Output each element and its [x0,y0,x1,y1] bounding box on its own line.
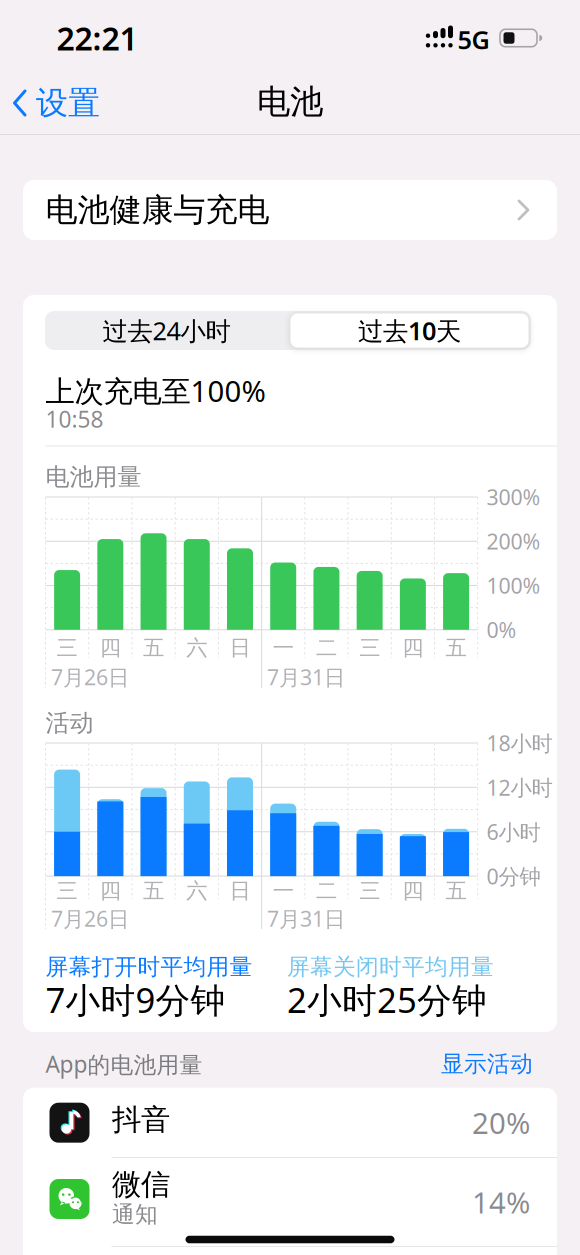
staticText: 三 [57,635,78,661]
staticText: 6小时 [486,818,540,846]
staticText: 2小时25分钟 [287,976,487,1022]
staticText: 18小时 [486,729,552,757]
staticText: 200% [486,527,540,555]
staticText: 五 [446,878,467,904]
button[interactable]: 显示活动 [413,1050,533,1078]
staticText: 通知 [112,1201,158,1228]
staticText: 活动 [45,708,93,738]
staticText: 电池健康与充电 [45,190,269,230]
staticText: 日 [229,635,250,661]
staticText: 微信 [112,1166,170,1202]
staticText: 四 [100,878,121,904]
staticText: 五 [446,635,467,661]
staticText: 22:21 [56,17,137,59]
staticText: 三 [359,878,380,904]
staticText: 一 [273,878,294,904]
staticText: 日 [229,878,250,904]
staticText: 20% [472,1103,530,1142]
staticText: App的电池用量 [45,1049,202,1079]
staticText: 四 [402,635,423,661]
staticText: 上次充电至100% [45,371,265,410]
staticText: 二 [316,878,337,904]
button[interactable]: 返回设置 [10,85,105,121]
button[interactable]: 抖音 [23,1088,557,1158]
button[interactable]: 微信 [23,1157,557,1246]
staticText: 12小时 [486,773,552,801]
staticText: 7月26日 [51,663,129,691]
button[interactable]: 电池健康与充电 [23,180,557,240]
staticText: 显示活动 [441,1050,533,1078]
staticText: 六 [186,878,207,904]
staticText: 过去24小时 [102,314,230,347]
staticText: 电池 [257,81,323,122]
staticText: 屏幕打开时平均用量 [45,953,252,981]
staticText: 电池用量 [45,462,141,492]
staticText: 四 [100,635,121,661]
staticText: 7月26日 [51,904,129,933]
staticText: 四 [402,878,423,904]
staticText: 10:58 [45,404,103,434]
staticText: 100% [486,571,540,600]
staticText: 300% [486,483,540,511]
staticText: 7月31日 [267,904,345,933]
staticText: 过去10天 [358,314,461,347]
button[interactable]: 过去10天 [290,313,529,348]
staticText: 5G [457,23,489,56]
staticText: 五 [143,878,164,904]
button[interactable]: 过去24小时 [46,311,286,350]
staticText: 设置 [36,83,100,123]
staticText: 0% [486,616,516,644]
staticText: 六 [186,635,207,661]
staticText: 14% [472,1182,530,1221]
staticText: 屏幕关闭时平均用量 [287,953,494,981]
staticText: 三 [57,878,78,904]
staticText: 五 [143,635,164,661]
staticText: 一 [273,635,294,661]
staticText: 0分钟 [486,862,540,890]
staticText: 二 [316,635,337,661]
staticText: 7小时9分钟 [45,976,225,1022]
staticText: 三 [359,635,380,661]
staticText: 抖音 [112,1102,170,1138]
staticText: 7月31日 [267,663,345,691]
